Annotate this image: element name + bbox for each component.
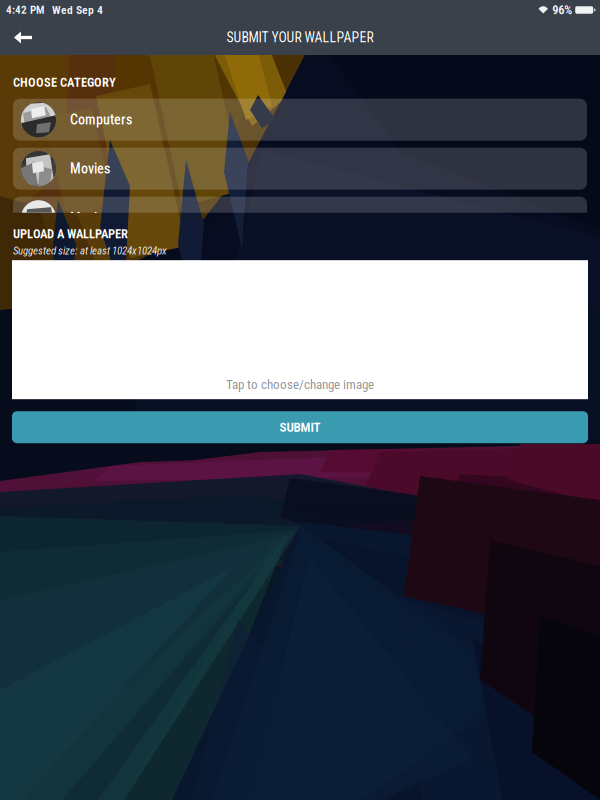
staticText: Computers [70, 111, 132, 128]
staticText: SUBMIT YOUR WALLPAPER [226, 29, 373, 46]
staticText: SUBMIT [279, 419, 320, 435]
button[interactable]: Music [13, 197, 587, 239]
button[interactable]: Tap to choose/change image [12, 260, 588, 399]
staticText: CHOOSE CATEGORY [13, 75, 116, 90]
staticText: Movies [70, 160, 110, 177]
button[interactable]: Movies [13, 148, 587, 190]
staticText: UPLOAD A WALLPAPER [13, 227, 128, 241]
button[interactable]: SUBMIT [12, 411, 588, 443]
staticText: 4:42 PM [6, 3, 44, 16]
staticText: Music [70, 209, 104, 226]
button[interactable]: Back [0, 20, 46, 54]
staticText: Wed Sep 4 [52, 3, 103, 17]
staticText: Suggested size: at least 1024x1024px [13, 244, 167, 257]
button[interactable]: Computers [13, 99, 587, 141]
staticText: Tap to choose/change image [226, 377, 374, 392]
staticText: 96% [552, 3, 572, 17]
